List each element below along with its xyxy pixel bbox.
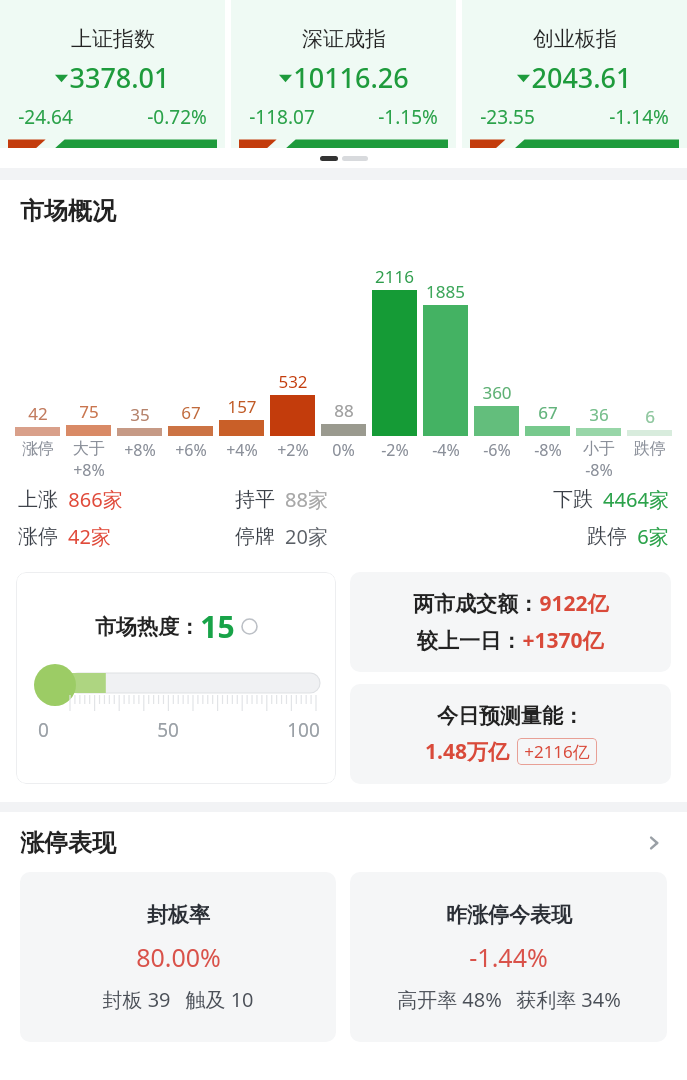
staticText: 88 — [334, 399, 354, 422]
staticText: 3378.01 — [69, 59, 170, 96]
staticText: 停牌 — [235, 524, 275, 549]
staticText: 157 — [227, 395, 257, 418]
other: 更多 — [641, 830, 667, 856]
staticText: 市场热度： — [95, 614, 200, 640]
staticText: 今日预测量能： — [437, 703, 584, 729]
staticText: 67 — [538, 401, 558, 424]
staticText: -8% — [534, 439, 562, 461]
staticText: 0% — [332, 439, 355, 461]
staticText: 42 — [28, 402, 48, 425]
staticText: 大于 — [73, 439, 105, 459]
staticText: -118.07 — [249, 104, 315, 130]
staticText: 15 — [200, 606, 235, 647]
button[interactable]: 封板率 — [20, 872, 336, 1042]
staticText: 两市成交额： — [413, 591, 539, 617]
staticText: 6家 — [637, 523, 669, 550]
staticText: 跌停 — [634, 439, 666, 459]
staticText: 深证成指 — [302, 26, 386, 52]
staticText: +8% — [73, 459, 105, 480]
staticText: 532 — [278, 370, 308, 393]
staticText: 866家 — [68, 486, 123, 513]
button[interactable]: 创业板指 — [462, 0, 687, 148]
staticText: 36 — [589, 403, 609, 426]
staticText: 35 — [130, 403, 150, 426]
staticText: 6 — [645, 405, 655, 428]
staticText: -1.14% — [609, 104, 669, 130]
staticText: -4% — [432, 439, 460, 461]
staticText: 涨停 — [22, 439, 54, 459]
staticText: 67 — [181, 401, 201, 424]
staticText: 2043.61 — [531, 59, 632, 96]
staticText: 高开率 48% — [397, 986, 502, 1013]
staticText: +8% — [124, 439, 156, 461]
button[interactable]: 昨涨停今表现 — [350, 872, 667, 1042]
staticText: +2116亿 — [524, 740, 590, 763]
staticText: 上证指数 — [71, 26, 155, 52]
button[interactable]: 深证成指 — [231, 0, 456, 148]
staticText: 涨停 — [18, 524, 58, 549]
staticText: 9122亿 — [539, 589, 609, 618]
staticText: 持平 — [235, 487, 275, 512]
staticText: -1.15% — [378, 104, 438, 130]
staticText: -24.64 — [18, 104, 73, 130]
staticText: 昨涨停今表现 — [446, 902, 572, 928]
staticText: +1370亿 — [522, 626, 604, 655]
staticText: 跌停 — [587, 524, 627, 549]
staticText: 小于 — [583, 439, 615, 459]
staticText: 创业板指 — [533, 26, 617, 52]
staticText: 88家 — [285, 486, 328, 513]
staticText: 42家 — [68, 523, 111, 550]
staticText: 下跌 — [553, 487, 593, 512]
staticText: 获利率 34% — [516, 986, 621, 1013]
button[interactable]: 两市成交额： — [350, 572, 671, 672]
staticText: +6% — [175, 439, 207, 461]
staticText: +4% — [226, 439, 258, 461]
staticText: 10116.26 — [293, 59, 409, 96]
staticText: 涨停表现 — [20, 828, 116, 858]
staticText: 市场概况 — [20, 196, 116, 226]
staticText: 较上一日： — [417, 628, 522, 654]
staticText: 封板率 — [147, 902, 210, 928]
button[interactable]: 涨停表现 — [20, 828, 667, 858]
staticText: 360 — [482, 381, 512, 404]
staticText: -6% — [483, 439, 511, 461]
staticText: 上涨 — [18, 487, 58, 512]
staticText: 20家 — [285, 523, 328, 550]
staticText: -8% — [585, 459, 613, 480]
staticText: -0.72% — [147, 104, 207, 130]
staticText: -2% — [381, 439, 409, 461]
staticText: 1885 — [426, 280, 465, 303]
button[interactable]: 上证指数 — [0, 0, 225, 148]
staticText: 4464家 — [603, 486, 669, 513]
staticText: +2% — [277, 439, 309, 461]
staticText: 0 — [38, 717, 49, 743]
staticText: -23.55 — [480, 104, 535, 130]
button[interactable]: 市场热度： — [16, 572, 336, 784]
staticText: 100 — [287, 717, 320, 743]
staticText: 2116 — [375, 265, 414, 288]
staticText: 触及 10 — [185, 986, 254, 1013]
staticText: 50 — [157, 717, 179, 743]
staticText: 75 — [79, 400, 99, 423]
staticText: 80.00% — [136, 940, 221, 974]
staticText: -1.44% — [469, 940, 548, 974]
staticText: 1.48万亿 — [425, 737, 509, 766]
button[interactable]: 今日预测量能： — [350, 684, 671, 784]
staticText: 封板 39 — [102, 986, 171, 1013]
